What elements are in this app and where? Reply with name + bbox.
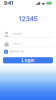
staticText: Login: [21, 57, 34, 63]
staticText: Remember me: [10, 50, 24, 53]
staticText: Password: [12, 42, 22, 45]
staticText: 12345: [18, 15, 37, 23]
staticText: 9:41: [4, 0, 13, 6]
button[interactable]: Login: [3, 57, 53, 63]
button[interactable]: Remember me: [0, 49, 56, 54]
staticText: Username: [12, 33, 22, 35]
